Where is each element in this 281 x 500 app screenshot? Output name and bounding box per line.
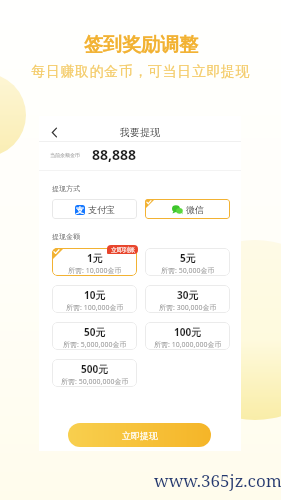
staticText: www.365jz.com (154, 469, 281, 492)
button[interactable]: 100元 (145, 322, 230, 350)
staticText: 所需: 50,000金币 (161, 266, 215, 276)
staticText: 所需: 300,000金币 (159, 303, 217, 313)
staticText: 5元 (180, 251, 196, 265)
button[interactable]: 支 (52, 199, 137, 219)
staticText: 立即提现 (122, 430, 158, 441)
button[interactable]: 立即提现 (68, 423, 211, 447)
button[interactable]: 500元 (52, 359, 137, 387)
button[interactable]: 返回 (45, 123, 63, 141)
staticText: 我要提现 (120, 126, 160, 139)
button[interactable]: 1元 (52, 248, 137, 276)
staticText: 每日赚取的金币，可当日立即提现 (31, 63, 250, 81)
staticText: 所需: 100,000金币 (66, 303, 124, 313)
staticText: 提现金额 (52, 232, 80, 241)
staticText: 500元 (81, 362, 109, 376)
button[interactable]: 微信 (145, 199, 230, 219)
staticText: 所需: 10,000,000金币 (154, 340, 222, 350)
staticText: 10元 (84, 288, 106, 302)
staticText: 立即到账 (111, 246, 135, 254)
staticText: 提现方式 (52, 184, 80, 193)
staticText: 88,888 (92, 145, 137, 164)
staticText: 所需: 50,000,000金币 (61, 377, 129, 387)
staticText: 签到奖励调整 (84, 33, 198, 57)
staticText: 100元 (174, 325, 202, 339)
staticText: 支付宝 (88, 204, 115, 215)
button[interactable]: 50元 (52, 322, 137, 350)
staticText: 所需: 10,000金币 (68, 266, 122, 276)
staticText: 1元 (87, 251, 103, 265)
button[interactable]: 30元 (145, 285, 230, 313)
staticText: 50元 (84, 325, 106, 339)
button[interactable]: 10元 (52, 285, 137, 313)
button[interactable]: 5元 (145, 248, 230, 276)
staticText: 30元 (177, 288, 199, 302)
staticText: 支 (76, 205, 84, 215)
staticText: 微信 (186, 204, 204, 215)
staticText: 所需: 5,000,000金币 (63, 340, 127, 350)
staticText: 当前余额金币 (50, 152, 80, 158)
